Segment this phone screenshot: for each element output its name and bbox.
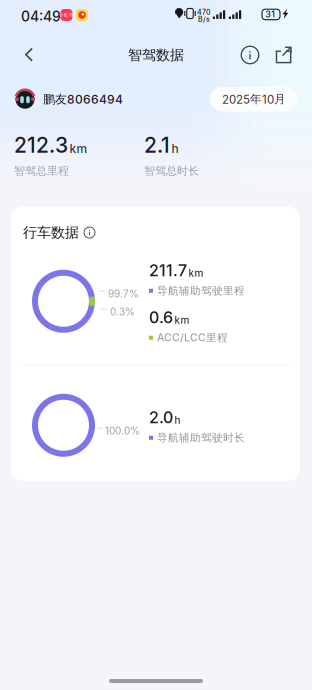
staticText: 0.6 <box>149 308 173 327</box>
staticText: B/s <box>198 15 210 23</box>
staticText: 212.3 <box>14 132 68 158</box>
staticText: 0.3% <box>110 306 135 318</box>
staticText: km <box>69 141 87 156</box>
staticText: h <box>171 141 178 156</box>
staticText: 470 <box>197 8 211 16</box>
staticText: 行车数据 <box>23 224 79 241</box>
staticText: 04:49 <box>21 8 61 25</box>
staticText: 2.1 <box>144 132 170 158</box>
staticText: 99.7% <box>108 288 139 300</box>
staticText: 100.0% <box>105 425 140 437</box>
staticText: km <box>188 267 203 279</box>
button[interactable]: Info <box>232 34 268 76</box>
staticText: 2.0 <box>149 408 173 427</box>
staticText: 2025年10月 <box>222 92 286 106</box>
staticText: 导航辅助驾驶时长 <box>157 431 245 444</box>
button[interactable]: Share <box>266 34 302 76</box>
staticText: km <box>174 314 189 326</box>
staticText: 小红书 <box>59 12 74 18</box>
button[interactable]: 2025年10月 <box>210 87 298 111</box>
staticText: 智驾总时长 <box>144 164 199 178</box>
button[interactable]: Back <box>9 34 49 76</box>
staticText: ACC/LCC里程 <box>157 331 228 344</box>
staticText: 31 <box>265 9 275 20</box>
staticText: 智驾总里程 <box>14 164 69 178</box>
staticText: 导航辅助驾驶里程 <box>157 284 245 297</box>
staticText: 211.7 <box>149 261 187 280</box>
staticText: 智驾数据 <box>128 46 184 64</box>
staticText: h <box>174 414 180 426</box>
staticText: 鹏友8066494 <box>43 92 123 107</box>
